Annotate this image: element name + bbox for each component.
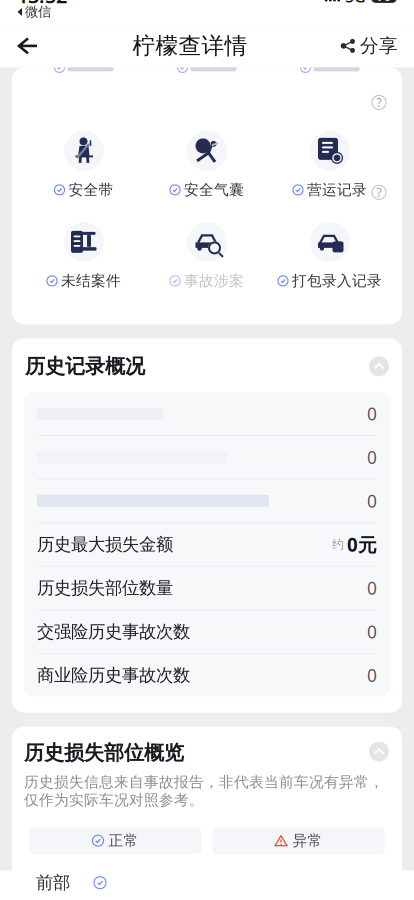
button[interactable]: 安全气囊 [145, 130, 268, 197]
staticText: 0 [367, 402, 377, 425]
button[interactable]: 未结案件 [22, 221, 145, 288]
staticText: 历史记录概况 [25, 354, 145, 379]
staticText: 70 [377, 0, 391, 4]
button[interactable]: 分享 [324, 24, 414, 67]
staticText: 分享 [360, 34, 398, 57]
staticText: 0 [367, 577, 377, 600]
button[interactable]: 事故涉案 [145, 221, 268, 288]
button[interactable]: Back [0, 24, 56, 67]
staticText: 5G [345, 0, 366, 7]
staticText: 正常 [108, 832, 138, 850]
staticText: 0 [367, 664, 377, 687]
staticText: 0元 [347, 532, 377, 557]
staticText: 安全气囊 [184, 181, 244, 199]
staticText: 事故涉案 [184, 272, 244, 290]
staticText: 历史损失信息来自事故报告，非代表当前车况有异常，仅作为实际车况对照参考。 [24, 773, 384, 809]
button[interactable]: Collapse section [369, 742, 389, 762]
button[interactable]: 正常 [29, 827, 201, 854]
staticText: 安全带 [68, 181, 113, 199]
staticText: ? [376, 184, 381, 200]
staticText: 营运记录 [307, 181, 367, 199]
button[interactable]: 营运记录 [268, 130, 391, 197]
button[interactable]: 安全带 [22, 130, 145, 197]
staticText: 未结案件 [61, 272, 121, 290]
staticText: 交强险历史事故次数 [37, 621, 190, 642]
staticText: 异常 [292, 832, 322, 850]
staticText: 历史损失部位概览 [24, 741, 184, 765]
staticText: ? [376, 94, 381, 110]
staticText: 柠檬查详情 [132, 32, 247, 60]
button[interactable]: 打包录入记录 [268, 221, 391, 288]
staticText: 0 [367, 489, 377, 512]
staticText: 13:52 [17, 0, 67, 9]
staticText: 约 [332, 537, 344, 552]
staticText: 0 [367, 446, 377, 469]
staticText: 历史最大损失金额 [37, 534, 173, 555]
staticText: 历史损失部位数量 [37, 577, 173, 599]
staticText: 0 [367, 620, 377, 643]
button[interactable]: 异常 [212, 827, 384, 854]
button[interactable]: Collapse section [369, 356, 389, 376]
staticText: 打包录入记录 [292, 272, 382, 290]
staticText: 商业险历史事故次数 [37, 665, 190, 686]
staticText: 微信 [25, 4, 51, 20]
staticText: 前部 [36, 872, 70, 893]
